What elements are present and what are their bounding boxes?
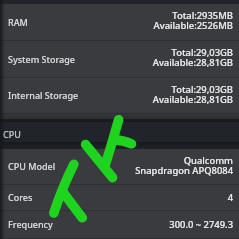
staticText: Internal Storage bbox=[8, 89, 79, 101]
staticText: 4 bbox=[227, 191, 233, 204]
staticText: Qualcomm Snapdragon APQ8084 bbox=[135, 154, 233, 177]
button[interactable]: RAM bbox=[0, 4, 239, 41]
staticText: Frequency bbox=[8, 218, 53, 230]
button[interactable]: System Storage bbox=[0, 41, 239, 78]
staticText: CPU Model bbox=[8, 160, 56, 172]
staticText: Cores bbox=[8, 191, 33, 203]
button[interactable]: Frequency bbox=[0, 211, 239, 239]
button[interactable]: CPU Model bbox=[0, 149, 239, 185]
staticText: Total:2935MB Available:2526MB bbox=[153, 9, 233, 32]
button[interactable]: Internal Storage bbox=[0, 78, 239, 114]
staticText: Total:29,03GB Available:28,81GB bbox=[152, 46, 233, 69]
staticText: RAM bbox=[8, 16, 28, 28]
staticText: 300.0 ~ 2749.3 bbox=[169, 218, 233, 231]
staticText: CPU bbox=[3, 128, 21, 140]
staticText: System Storage bbox=[8, 53, 75, 65]
button[interactable]: Cores bbox=[0, 185, 239, 211]
staticText: Total:29,03GB Available:28,81GB bbox=[152, 83, 233, 106]
